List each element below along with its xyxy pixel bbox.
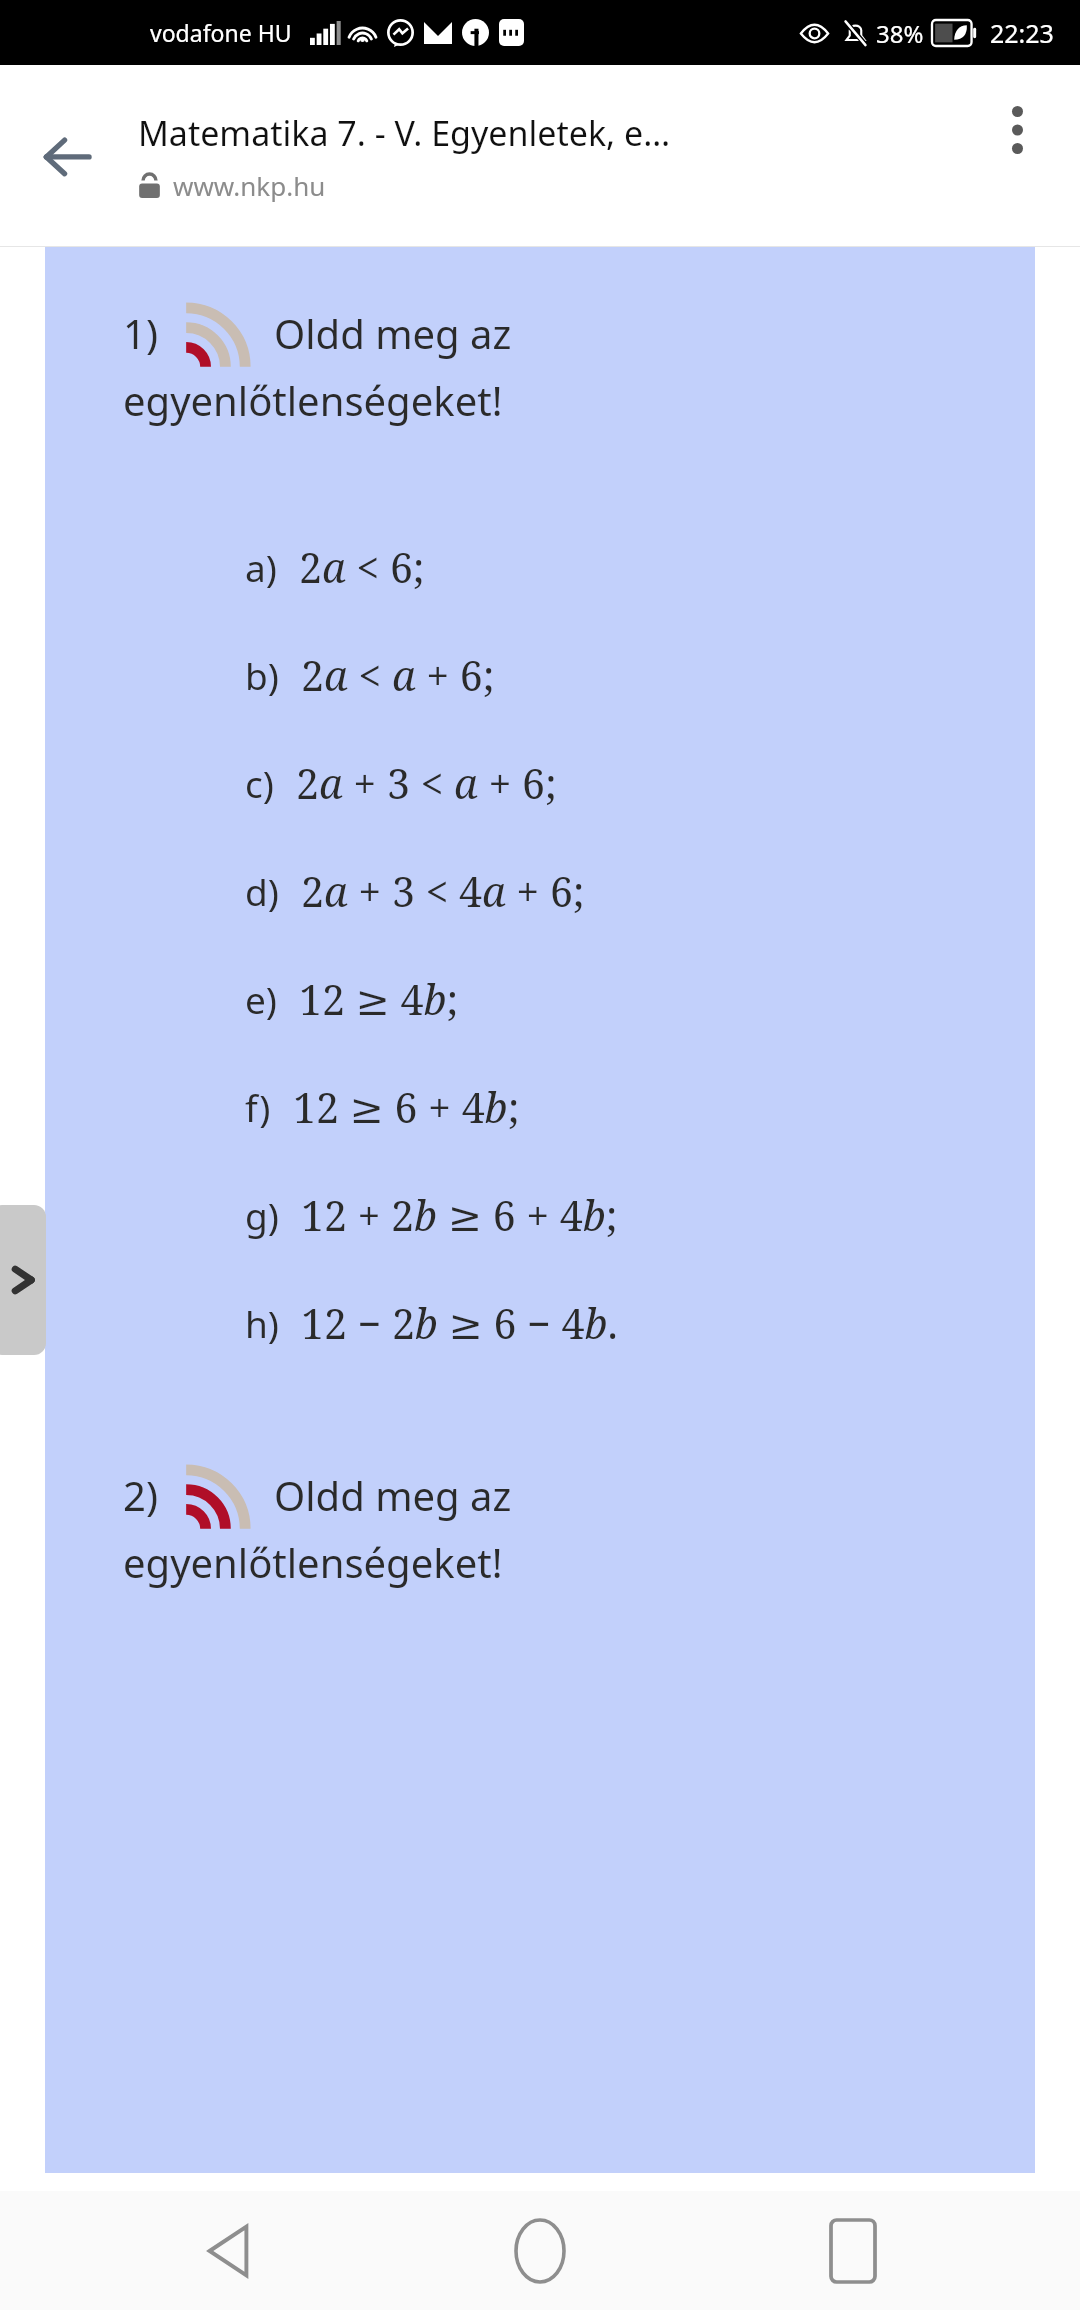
button[interactable]: Back (143, 2191, 313, 2310)
staticText: vodafone HU (150, 17, 292, 48)
staticText: 22:23 (990, 16, 1054, 50)
button[interactable]: h) (45, 1269, 1035, 1377)
staticText: f) (245, 1082, 271, 1132)
staticText: Oldd meg az (274, 1468, 512, 1522)
staticText: www.nkp.hu (173, 168, 326, 203)
staticText: b) (245, 650, 279, 700)
button[interactable]: 2) (45, 1459, 1035, 1589)
staticText: 2a + 3 < 4a + 6; (301, 863, 585, 919)
button[interactable]: Home (455, 2191, 625, 2310)
button[interactable]: b) (45, 621, 1035, 729)
staticText: 2) (123, 1468, 158, 1522)
staticText: c) (245, 758, 274, 808)
button[interactable]: d) (45, 837, 1035, 945)
button[interactable]: e) (45, 945, 1035, 1053)
staticText: egyenlőtlenségeket! (123, 373, 503, 427)
staticText: g) (245, 1190, 279, 1240)
staticText: h) (245, 1298, 279, 1348)
staticText: d) (245, 866, 279, 916)
staticText: 12 + 2b ≥ 6 + 4b; (301, 1187, 618, 1243)
staticText: e) (245, 974, 277, 1024)
staticText: 12 ≥ 6 + 4b; (293, 1079, 520, 1135)
staticText: 1) (123, 306, 158, 360)
button[interactable]: g) (45, 1161, 1035, 1269)
button[interactable]: More options (972, 85, 1062, 175)
button[interactable]: Back (22, 111, 112, 201)
button[interactable]: c) (45, 729, 1035, 837)
staticText: a) (245, 542, 277, 592)
staticText: 38% (876, 17, 924, 50)
button[interactable]: Matematika 7. - V. Egyenletek, e… (138, 110, 962, 203)
button[interactable]: Open side panel (0, 1205, 46, 1355)
button[interactable]: Recent apps (768, 2191, 938, 2310)
staticText: 2a + 3 < a + 6; (296, 755, 557, 811)
button[interactable]: a) (45, 513, 1035, 621)
staticText: Matematika 7. - V. Egyenletek, e… (138, 110, 671, 156)
staticText: egyenlőtlenségeket! (123, 1535, 503, 1589)
staticText: 12 ≥ 4b; (299, 971, 459, 1027)
staticText: 2a < 6; (299, 539, 425, 595)
staticText: Oldd meg az (274, 306, 512, 360)
button[interactable]: 1) (45, 297, 1035, 427)
staticText: 2a < a + 6; (301, 647, 495, 703)
staticText: 12 − 2b ≥ 6 − 4b. (301, 1295, 618, 1351)
button[interactable]: f) (45, 1053, 1035, 1161)
